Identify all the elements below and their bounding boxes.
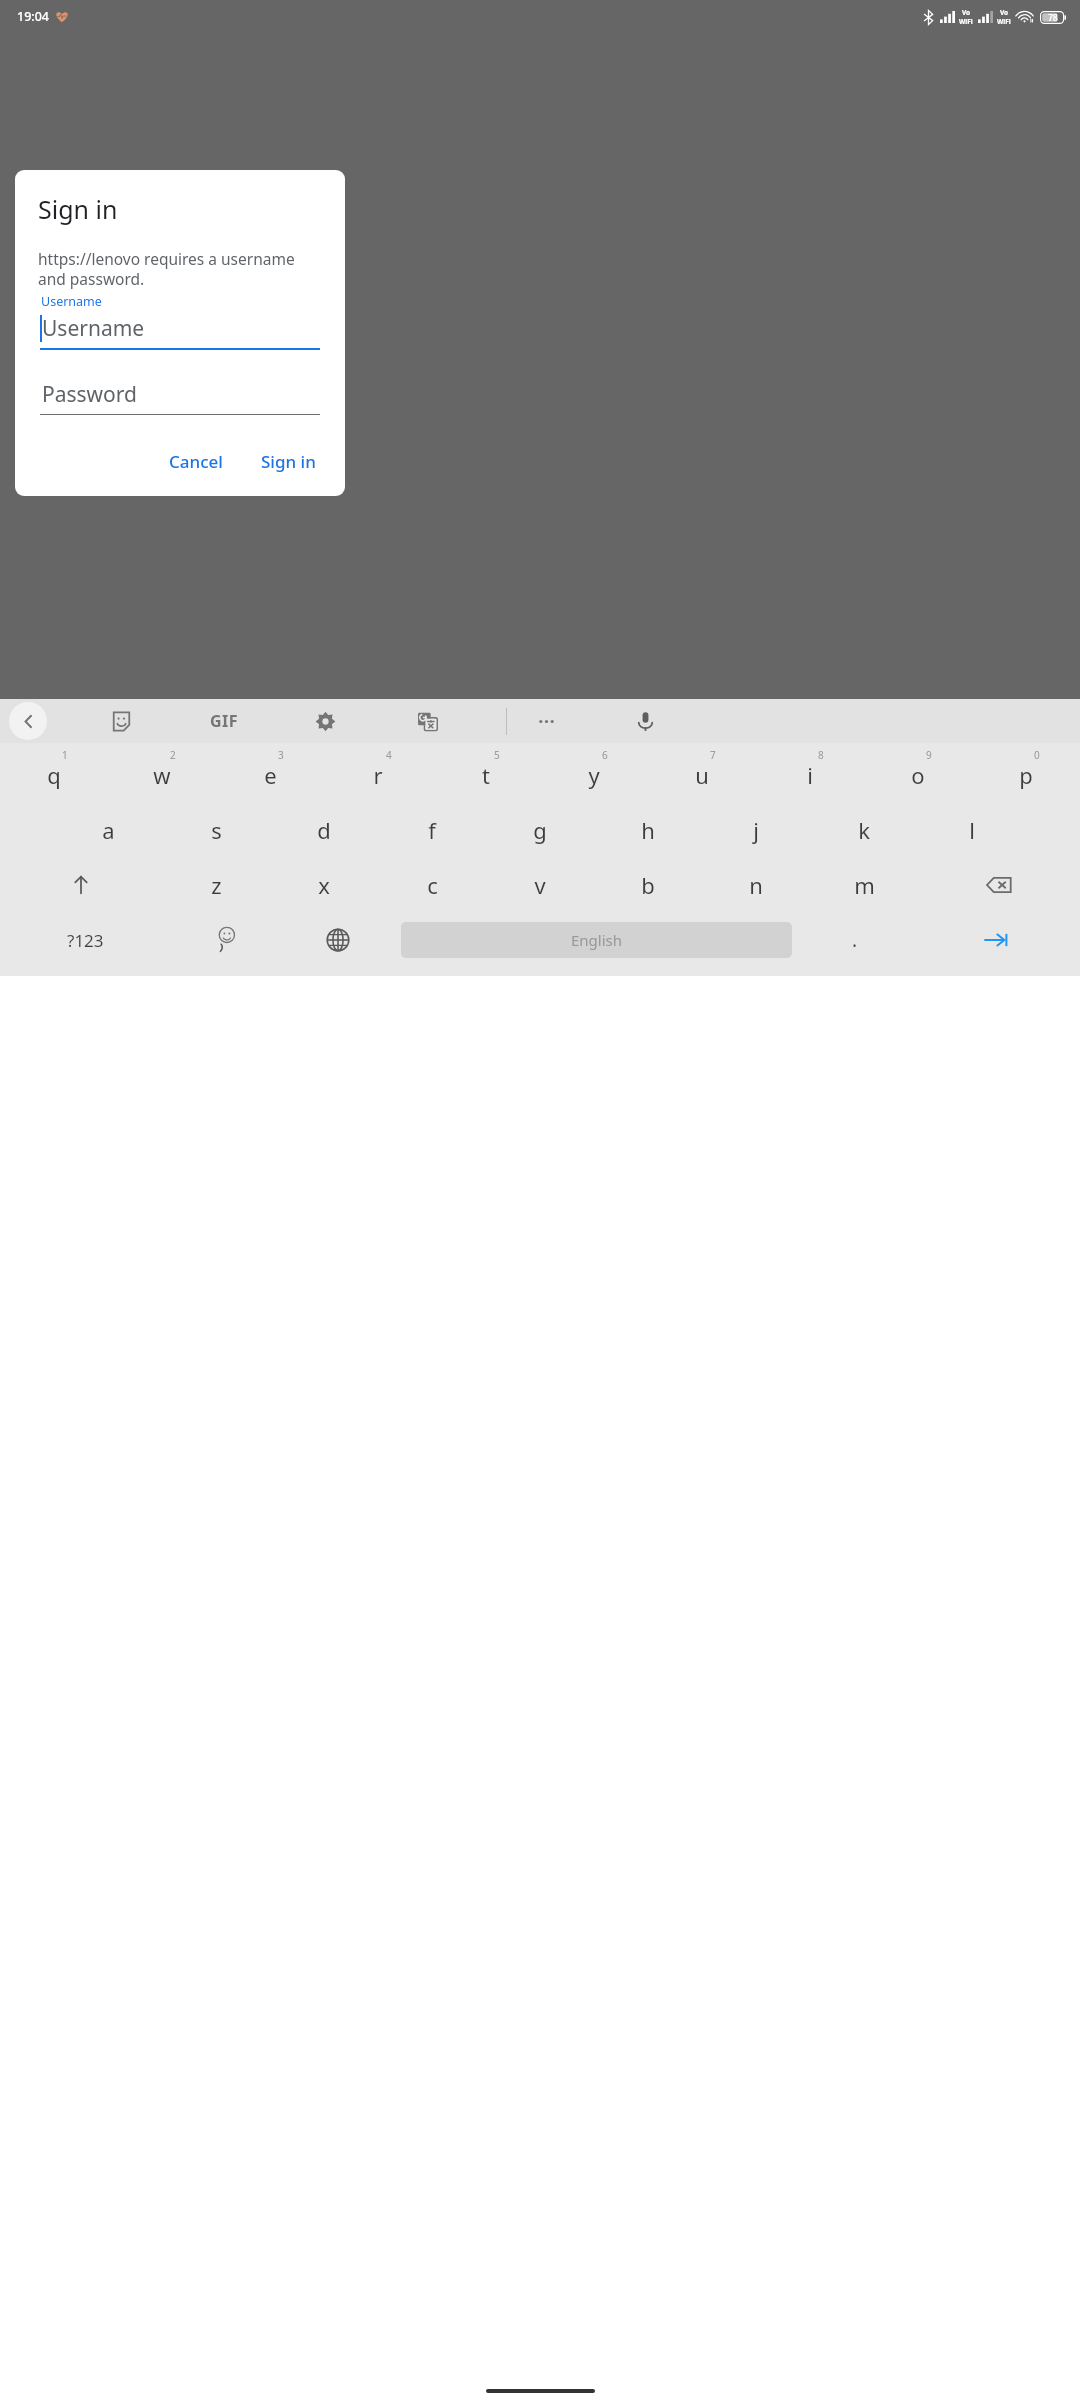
staticText: Vo: [962, 8, 971, 17]
button[interactable]: GIF: [205, 702, 243, 740]
staticText: 0: [1034, 748, 1040, 762]
staticText: z: [211, 870, 222, 900]
staticText: GIF: [210, 710, 239, 732]
button[interactable]: m: [810, 857, 918, 912]
staticText: i: [807, 760, 813, 790]
button[interactable]: j: [702, 802, 810, 857]
staticText: Username: [41, 293, 102, 310]
button[interactable]: d: [270, 802, 378, 857]
staticText: y: [588, 760, 600, 790]
button[interactable]: Translate: [408, 702, 446, 740]
button[interactable]: s: [162, 802, 270, 857]
button[interactable]: f: [378, 802, 486, 857]
staticText: Sign in: [261, 450, 316, 473]
staticText: p: [1019, 760, 1033, 790]
button[interactable]: .: [799, 912, 911, 968]
staticText: w: [153, 760, 171, 790]
button[interactable]: i: [756, 747, 864, 802]
staticText: WiFi: [959, 17, 973, 26]
button[interactable]: y: [540, 747, 648, 802]
staticText: v: [534, 870, 546, 900]
staticText: 19:04: [17, 8, 50, 25]
button[interactable]: c: [378, 857, 486, 912]
staticText: ?123: [67, 929, 104, 952]
button[interactable]: Sign in: [249, 441, 328, 482]
staticText: https://lenovo requires a username and p…: [38, 248, 325, 290]
button[interactable]: Stickers: [102, 702, 140, 740]
button[interactable]: Password: [40, 380, 320, 409]
staticText: s: [211, 815, 222, 845]
button[interactable]: t: [432, 747, 540, 802]
staticText: d: [317, 815, 331, 845]
staticText: e: [264, 760, 277, 790]
staticText: 1: [62, 748, 68, 762]
staticText: n: [749, 870, 763, 900]
staticText: WiFi: [997, 17, 1011, 26]
button[interactable]: q: [0, 747, 108, 802]
staticText: m: [854, 870, 875, 900]
button[interactable]: Change language: [282, 912, 394, 968]
staticText: a: [102, 815, 115, 845]
button[interactable]: Emoji: [170, 912, 282, 968]
staticText: Password: [42, 380, 137, 409]
button[interactable]: z: [162, 857, 270, 912]
button[interactable]: o: [864, 747, 972, 802]
button[interactable]: Shift: [0, 857, 162, 912]
staticText: c: [427, 870, 438, 900]
button[interactable]: English: [401, 922, 792, 958]
staticText: .: [852, 927, 858, 953]
staticText: 78: [1048, 12, 1058, 24]
staticText: 6: [602, 748, 608, 762]
staticText: Cancel: [169, 450, 223, 473]
button[interactable]: e: [216, 747, 324, 802]
button[interactable]: x: [270, 857, 378, 912]
staticText: 9: [926, 748, 932, 762]
staticText: Sign in: [38, 192, 118, 226]
staticText: j: [753, 815, 759, 845]
button[interactable]: Backspace: [918, 857, 1080, 912]
staticText: r: [373, 760, 383, 790]
staticText: Username: [42, 314, 145, 343]
staticText: g: [533, 815, 547, 845]
staticText: 5: [494, 748, 500, 762]
button[interactable]: a: [54, 802, 162, 857]
staticText: Vo: [1000, 8, 1009, 17]
staticText: l: [969, 815, 975, 845]
button[interactable]: n: [702, 857, 810, 912]
button[interactable]: Next field: [911, 912, 1080, 968]
button[interactable]: p: [972, 747, 1080, 802]
staticText: 4: [386, 748, 392, 762]
button[interactable]: Settings: [306, 702, 344, 740]
button[interactable]: k: [810, 802, 918, 857]
button[interactable]: h: [594, 802, 702, 857]
staticText: q: [47, 760, 61, 790]
staticText: 3: [278, 748, 284, 762]
staticText: o: [911, 760, 925, 790]
button[interactable]: b: [594, 857, 702, 912]
button[interactable]: Back: [9, 702, 47, 740]
button[interactable]: g: [486, 802, 594, 857]
button[interactable]: v: [486, 857, 594, 912]
staticText: b: [641, 870, 655, 900]
staticText: h: [641, 815, 655, 845]
staticText: t: [482, 760, 490, 790]
staticText: f: [428, 815, 436, 845]
staticText: x: [318, 870, 330, 900]
button[interactable]: More options: [527, 702, 565, 740]
button[interactable]: u: [648, 747, 756, 802]
staticText: English: [571, 930, 623, 950]
button[interactable]: l: [918, 802, 1026, 857]
staticText: k: [858, 815, 870, 845]
staticText: u: [695, 760, 709, 790]
button[interactable]: ?123: [0, 912, 170, 968]
button[interactable]: Username: [40, 314, 320, 343]
staticText: 7: [710, 748, 716, 762]
staticText: 2: [170, 748, 176, 762]
button[interactable]: r: [324, 747, 432, 802]
button[interactable]: Cancel: [157, 441, 235, 482]
button[interactable]: Voice input: [626, 702, 664, 740]
staticText: 8: [818, 748, 824, 762]
button[interactable]: w: [108, 747, 216, 802]
